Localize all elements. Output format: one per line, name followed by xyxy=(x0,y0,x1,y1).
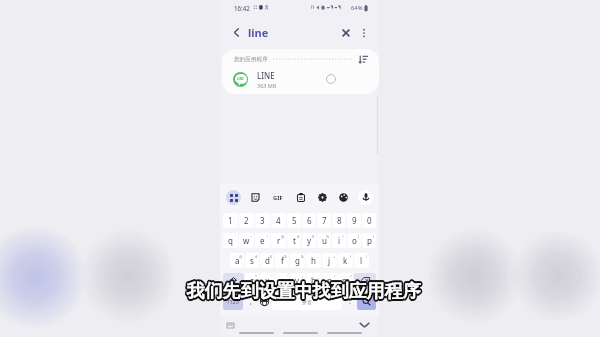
staticText: , xyxy=(250,297,252,307)
button[interactable]: e xyxy=(255,233,270,248)
button[interactable]: Comma xyxy=(244,293,257,310)
button[interactable]: Navigation 0 xyxy=(238,330,274,336)
staticText: 64% xyxy=(351,4,363,12)
button[interactable]: g xyxy=(290,253,305,268)
staticText: x xyxy=(265,275,270,286)
staticText: 3 xyxy=(260,215,265,226)
staticText: ! xyxy=(267,234,269,239)
staticText: ( xyxy=(350,254,352,259)
staticText: 拼音 xyxy=(302,299,312,305)
staticText: : xyxy=(302,274,304,279)
button[interactable]: Settings xyxy=(315,190,330,205)
button[interactable]: 5 xyxy=(287,213,301,228)
staticText: ?123 xyxy=(227,298,239,305)
staticText: 9 xyxy=(352,215,357,226)
button[interactable]: n xyxy=(322,273,337,288)
button[interactable]: 拼音 xyxy=(272,293,342,310)
button[interactable]: Stickers xyxy=(248,190,263,205)
button[interactable]: u xyxy=(317,233,331,248)
staticText: v xyxy=(295,275,300,286)
button[interactable]: Voice input xyxy=(358,190,373,205)
button[interactable]: Clear xyxy=(338,25,353,40)
button[interactable]: ?123 xyxy=(223,293,243,310)
button[interactable]: 7 xyxy=(317,213,331,228)
button[interactable]: Navigation 1 xyxy=(282,330,318,336)
button[interactable]: f xyxy=(275,253,289,268)
button[interactable]: 9 xyxy=(347,213,361,228)
button[interactable]: Sort xyxy=(358,54,369,65)
staticText: b xyxy=(311,275,316,286)
staticText: t xyxy=(293,235,296,246)
button[interactable]: p xyxy=(362,233,376,248)
button[interactable]: Clipboard xyxy=(293,190,308,205)
staticText: e xyxy=(260,235,265,246)
button[interactable]: Themes xyxy=(336,190,351,205)
staticText: 1 xyxy=(228,215,233,226)
button[interactable]: Keyboard layout xyxy=(225,320,236,331)
staticText: c xyxy=(280,275,284,286)
staticText: p xyxy=(367,235,372,246)
button[interactable]: Hide keyboard xyxy=(357,319,371,331)
button[interactable]: Back xyxy=(228,25,243,40)
button[interactable]: h xyxy=(306,253,321,268)
staticText: $ xyxy=(270,254,273,259)
button[interactable]: GIF xyxy=(269,189,286,206)
button[interactable]: w xyxy=(239,233,254,248)
staticText: 4 xyxy=(276,215,281,226)
button[interactable]: l xyxy=(354,253,369,268)
staticText: GIF xyxy=(273,194,283,202)
button[interactable]: y xyxy=(302,233,316,248)
staticText: % xyxy=(326,234,330,239)
button[interactable]: v xyxy=(290,273,305,288)
button[interactable]: Change language xyxy=(258,293,271,310)
button[interactable]: t xyxy=(287,233,301,248)
staticText: n xyxy=(327,275,332,286)
button[interactable]: Keyboard modes xyxy=(226,190,241,205)
button[interactable]: j xyxy=(322,253,337,268)
button[interactable]: 8 xyxy=(332,213,346,228)
button[interactable]: q xyxy=(223,233,238,248)
staticText: ? xyxy=(350,274,352,279)
staticText: q xyxy=(228,235,233,246)
button[interactable]: d xyxy=(260,253,274,268)
button[interactable]: r xyxy=(271,233,286,248)
staticText: . xyxy=(349,297,351,307)
button[interactable]: Select app xyxy=(324,72,338,86)
staticText: 16:42 xyxy=(234,4,250,12)
staticText: 0 xyxy=(367,215,372,226)
button[interactable]: Navigation 2 xyxy=(326,330,362,336)
button[interactable]: More options xyxy=(356,25,371,40)
staticText: f xyxy=(281,255,284,266)
button[interactable]: 6 xyxy=(302,213,316,228)
button[interactable]: k xyxy=(338,253,353,268)
button[interactable]: x xyxy=(260,273,274,288)
button[interactable]: 2 xyxy=(239,213,254,228)
staticText: LINE xyxy=(237,77,244,81)
button[interactable]: i xyxy=(332,233,346,248)
button[interactable]: o xyxy=(347,233,361,248)
button[interactable]: m xyxy=(338,273,353,288)
staticText: @ xyxy=(281,234,285,239)
button[interactable]: LINE xyxy=(222,66,379,92)
button[interactable]: 1 xyxy=(223,213,238,228)
button[interactable]: Period xyxy=(343,293,356,310)
staticText: ) xyxy=(366,254,368,259)
button[interactable]: b xyxy=(306,273,321,288)
button[interactable]: a xyxy=(230,253,244,268)
staticText: 8 xyxy=(337,215,342,226)
button[interactable]: Backspace xyxy=(354,273,376,288)
button[interactable]: 4 xyxy=(271,213,286,228)
button[interactable]: z xyxy=(245,273,259,288)
staticText: i xyxy=(338,235,341,246)
button[interactable]: 0 xyxy=(362,213,376,228)
staticText: o xyxy=(352,235,357,246)
staticText: $ xyxy=(312,234,315,239)
staticText: ! xyxy=(334,274,336,279)
button[interactable]: s xyxy=(245,253,259,268)
button[interactable]: Search xyxy=(357,293,376,310)
staticText: * xyxy=(255,274,258,279)
button[interactable]: Shift xyxy=(223,273,244,288)
button[interactable]: c xyxy=(275,273,289,288)
button[interactable]: 3 xyxy=(255,213,270,228)
staticText: - xyxy=(318,254,320,259)
